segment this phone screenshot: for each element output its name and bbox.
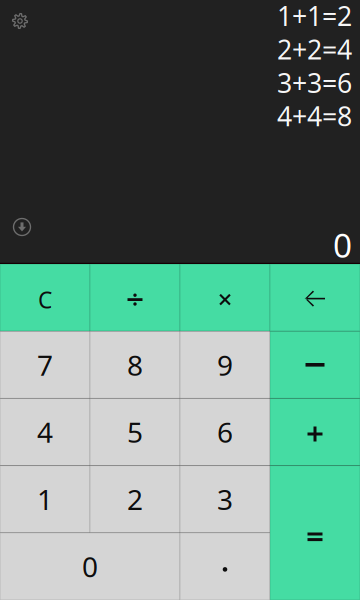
button[interactable]: 3 bbox=[180, 466, 270, 533]
staticText: 0 bbox=[82, 548, 98, 585]
staticText: 1 bbox=[37, 481, 53, 518]
staticText: 4 bbox=[37, 413, 53, 451]
button[interactable]: Add bbox=[270, 398, 360, 466]
button[interactable]: 4 bbox=[0, 398, 90, 466]
staticText: 1+1=2 bbox=[277, 0, 352, 33]
staticText: C bbox=[38, 284, 52, 315]
staticText: 3 bbox=[217, 481, 233, 518]
button[interactable]: Settings bbox=[5, 6, 35, 36]
staticText: 8 bbox=[127, 346, 143, 383]
button[interactable]: Clear bbox=[0, 264, 90, 331]
staticText: 0 bbox=[333, 223, 352, 267]
button[interactable]: 6 bbox=[180, 398, 270, 466]
staticText: 3+3=6 bbox=[277, 65, 352, 100]
staticText: 5 bbox=[127, 413, 143, 451]
button[interactable]: 1 bbox=[0, 466, 90, 533]
button[interactable]: 0 bbox=[0, 533, 180, 600]
button[interactable]: Decimal point bbox=[180, 533, 270, 600]
staticText: 2+2=4 bbox=[277, 31, 352, 67]
button[interactable]: Backspace bbox=[270, 264, 360, 331]
staticText: 7 bbox=[37, 346, 53, 383]
button[interactable]: 7 bbox=[0, 331, 90, 398]
staticText: 6 bbox=[217, 413, 233, 451]
staticText: 2 bbox=[127, 481, 143, 518]
staticText: 4+4=8 bbox=[277, 98, 352, 134]
button[interactable]: 5 bbox=[90, 398, 180, 466]
button[interactable]: 9 bbox=[180, 331, 270, 398]
button[interactable]: Equals bbox=[270, 466, 360, 600]
button[interactable]: Saved results bbox=[7, 212, 37, 242]
staticText: 9 bbox=[217, 346, 233, 383]
button[interactable]: 8 bbox=[90, 331, 180, 398]
button[interactable]: Subtract bbox=[270, 331, 360, 398]
button[interactable]: Multiply bbox=[180, 264, 270, 331]
button[interactable]: Divide bbox=[90, 264, 180, 331]
button[interactable]: 2 bbox=[90, 466, 180, 533]
